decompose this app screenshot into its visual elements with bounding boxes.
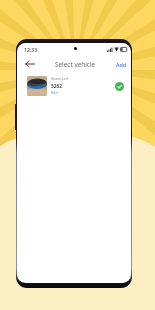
staticText: Add <box>116 61 127 68</box>
staticText: Select vehicle <box>55 60 96 69</box>
button[interactable]: Back <box>23 57 37 71</box>
staticText: Nissan Leaf <box>51 77 69 81</box>
button[interactable]: Add <box>116 61 127 68</box>
staticText: Edit <box>51 90 58 95</box>
staticText: 5262 <box>51 83 62 90</box>
staticText: 12:33 <box>24 46 38 53</box>
button[interactable]: Nissan Leaf <box>17 73 131 99</box>
